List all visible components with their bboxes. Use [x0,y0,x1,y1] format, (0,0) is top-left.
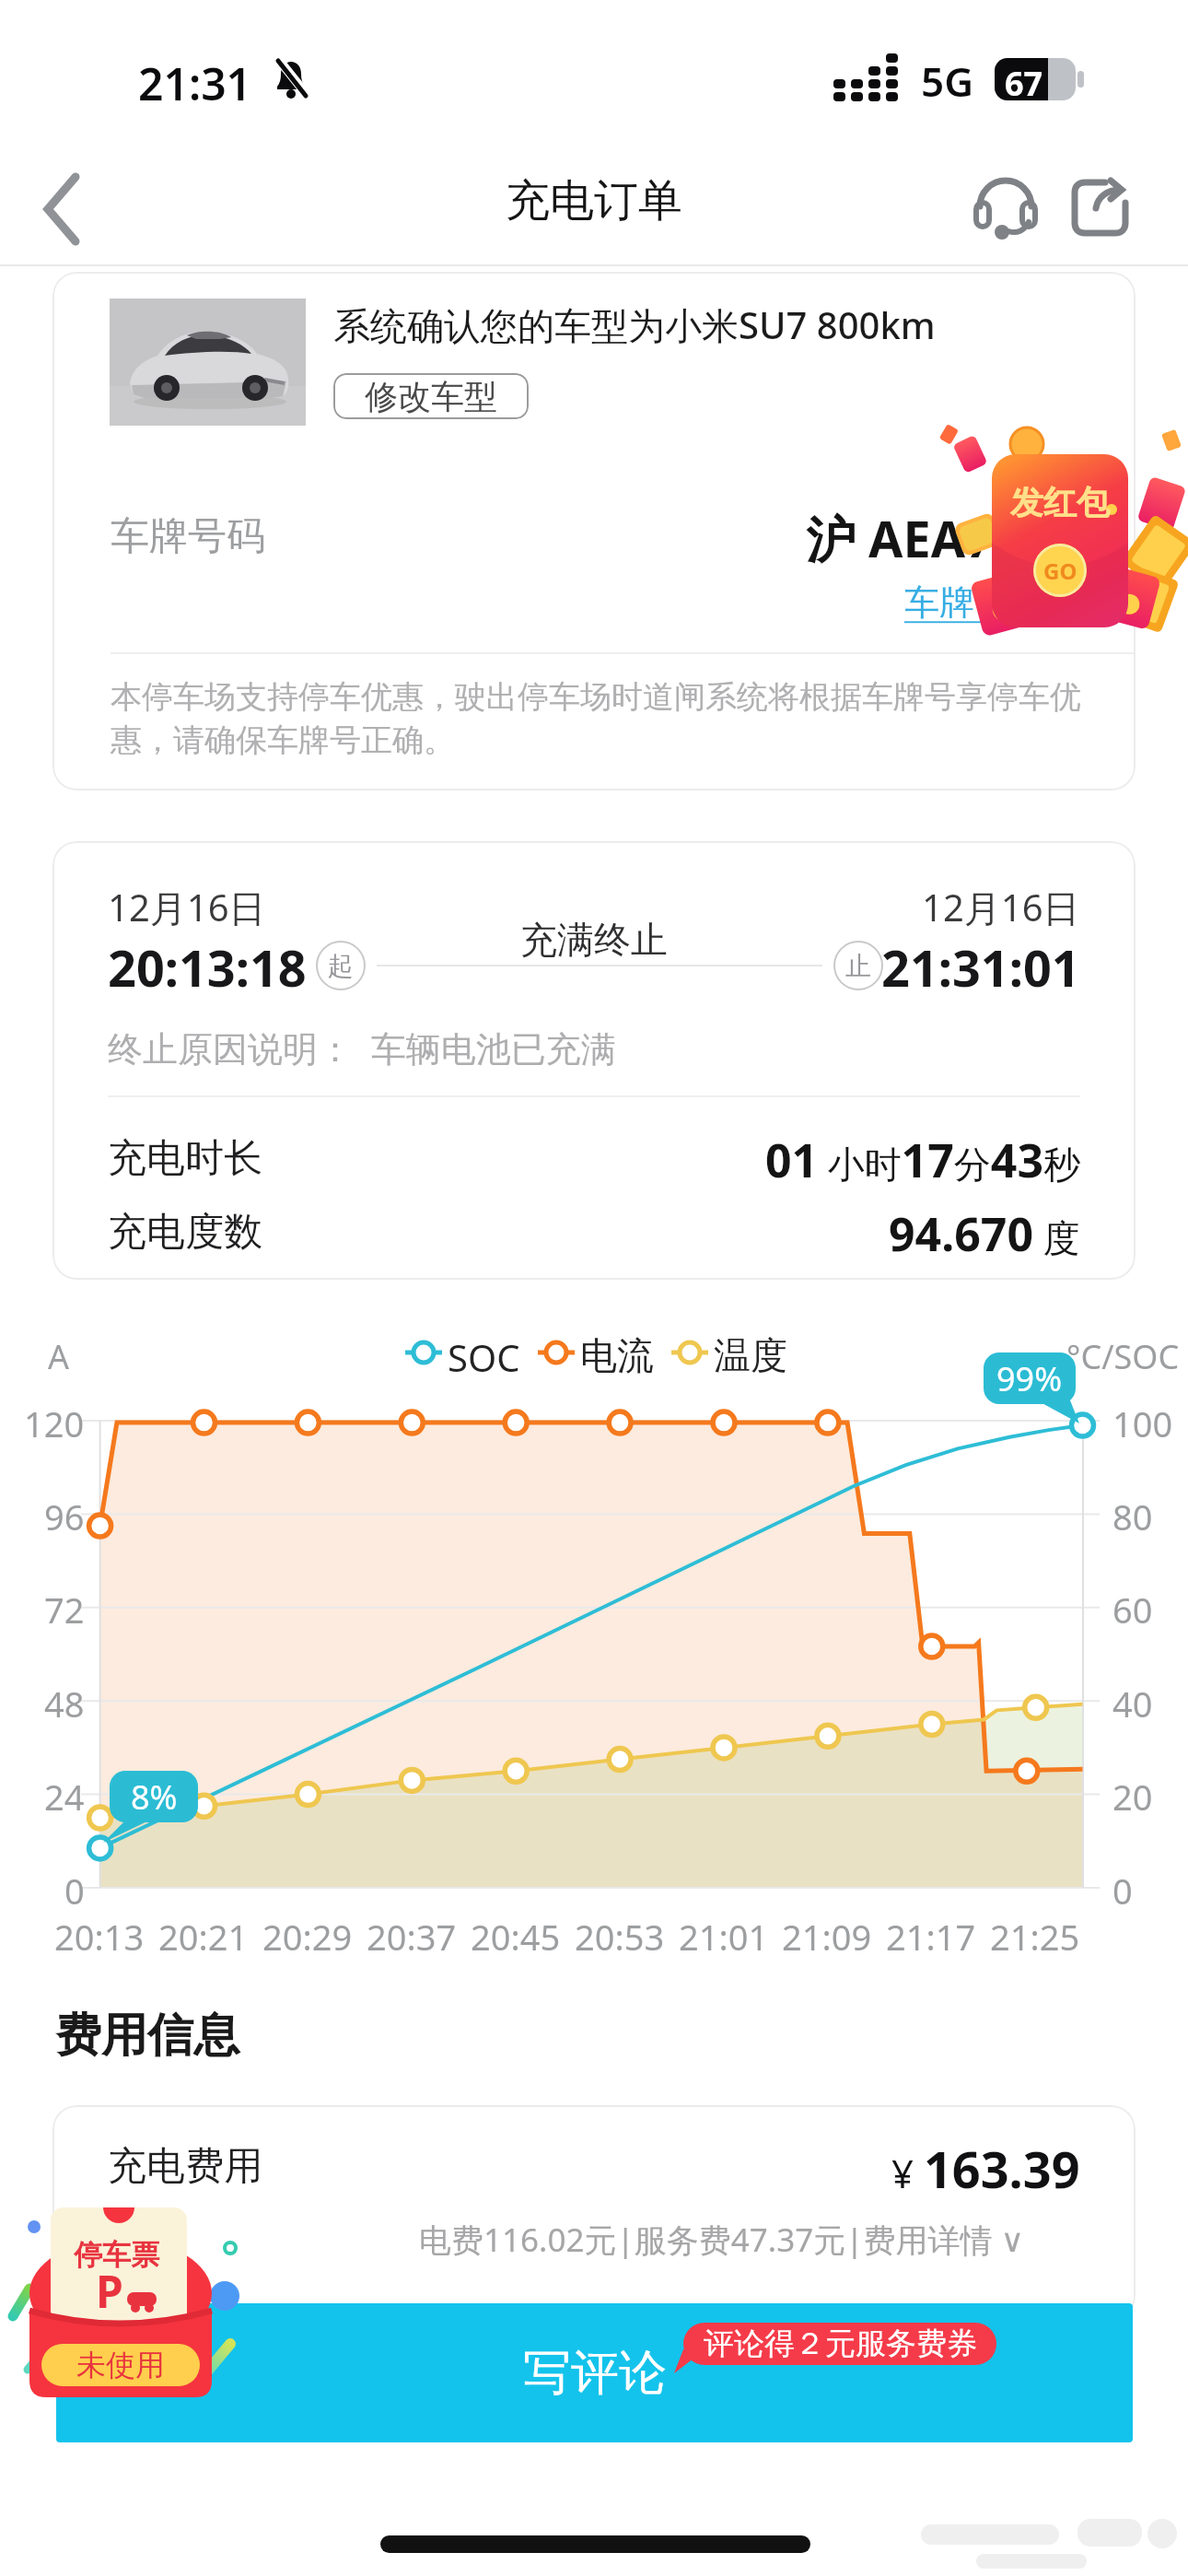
staticText: °C/SOC [1066,1334,1180,1379]
button[interactable]: 车牌号码 [904,580,1044,625]
button[interactable]: 修改车型 [333,373,529,419]
button[interactable]: 写评论 [56,2303,1133,2442]
staticText: 修改车型 [365,376,497,417]
staticText: ¥ 163.39 [891,2135,1080,2203]
staticText: 费用信息 [55,2007,239,2065]
staticText: 充电时长 [108,1134,262,1183]
staticText: P [96,2261,123,2321]
staticText: 发红包 [1010,482,1110,523]
staticText: 沪 AEA7B [806,504,1027,572]
staticText: 12月16日 [108,882,266,932]
staticText: 本停车场支持停车优惠，驶出停车场时道闸系统将根据车牌号享停车优 惠，请确保车牌号… [111,677,1081,760]
staticText: 12月16日 [922,882,1080,932]
staticText: 60 [1112,1586,1153,1633]
button[interactable] [18,157,120,258]
staticText: 0 [1112,1867,1133,1914]
staticText: 20:13 [54,1913,145,1961]
staticText: 20:21 [158,1913,249,1961]
button[interactable] [1061,166,1144,249]
staticText: 21:31:01 [881,933,1080,1001]
staticText: 终止原因说明： 车辆电池已充满 [108,1024,616,1071]
staticText: 21:25 [990,1913,1080,1961]
staticText: A [48,1334,70,1379]
staticText: SOC [448,1332,520,1382]
staticText: 充电订单 [506,173,682,228]
staticText: 止 [845,950,871,982]
staticText: 80 [1112,1493,1153,1540]
staticText: 01 小时17分43秒 [765,1129,1080,1191]
staticText: 20:13:18 [108,933,307,1001]
staticText: 充电费用 [108,2142,262,2191]
staticText: 电流 [580,1332,654,1378]
staticText: 停车票 [74,2237,159,2273]
staticText: 20:45 [471,1913,561,1961]
staticText: 21:31 [138,53,252,113]
staticText: 充电度数 [108,1208,262,1257]
staticText: 24 [44,1773,85,1821]
staticText: 96 [44,1493,85,1540]
staticText: 20:29 [262,1913,353,1961]
staticText: 21:17 [886,1913,976,1961]
button[interactable] [965,166,1048,249]
staticText: 100 [1112,1399,1173,1447]
staticText: GO [1043,556,1077,586]
staticText: 72 [44,1586,85,1633]
staticText: 车牌号码 [111,512,265,561]
staticText: 充满终止 [520,917,668,963]
staticText: 99% [996,1356,1063,1401]
staticText: 40 [1112,1680,1153,1727]
staticText: 起 [328,950,354,982]
staticText: 21:09 [782,1913,872,1961]
staticText: 21:01 [679,1913,769,1961]
staticText: 94.670 度 [889,1202,1080,1265]
staticText: 8% [131,1774,178,1820]
staticText: 20:37 [367,1913,457,1961]
staticText: 温度 [714,1332,787,1378]
staticText: 0 [64,1867,85,1914]
staticText: 67 [1005,61,1043,106]
staticText: 电费116.02元|服务费47.37元|费用详情 ∨ [419,2218,1025,2262]
staticText: 5G [921,53,974,109]
staticText: 写评论 [523,2343,667,2404]
staticText: 20:53 [575,1913,665,1961]
staticText: 车牌号码 [904,580,1044,625]
staticText: 48 [44,1680,85,1727]
staticText: 未使用 [76,2347,165,2383]
staticText: 120 [24,1399,85,1447]
staticText: 评论得２元服务费券 [704,2324,977,2363]
staticText: 20 [1112,1773,1153,1821]
staticText: 系统确认您的车型为小米SU7 800km [333,299,936,350]
